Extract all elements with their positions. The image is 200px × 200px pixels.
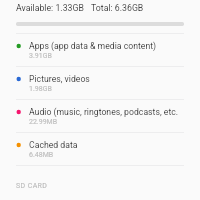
staticText: 6.48MB — [29, 151, 54, 159]
button[interactable]: Apps (app data & media content) — [0, 34, 200, 66]
staticText: 22.99MB — [29, 118, 58, 126]
staticText: Total: 6.36GB — [91, 3, 144, 13]
button[interactable]: Cached data — [0, 133, 200, 165]
staticText: Pictures, videos — [29, 74, 90, 84]
staticText: Audio (music, ringtones, podcasts, etc. — [29, 107, 179, 117]
staticText: Cached data — [29, 140, 78, 150]
staticText: 3.91GB — [29, 52, 52, 60]
staticText: Apps (app data & media content) — [29, 41, 157, 51]
staticText: 1.98GB — [29, 85, 52, 93]
staticText: SD CARD — [16, 182, 48, 190]
staticText: Available: 1.33GB — [16, 3, 84, 13]
button[interactable]: Pictures, videos — [0, 67, 200, 99]
button[interactable]: Audio (music, ringtones, podcasts, etc. — [0, 100, 200, 132]
